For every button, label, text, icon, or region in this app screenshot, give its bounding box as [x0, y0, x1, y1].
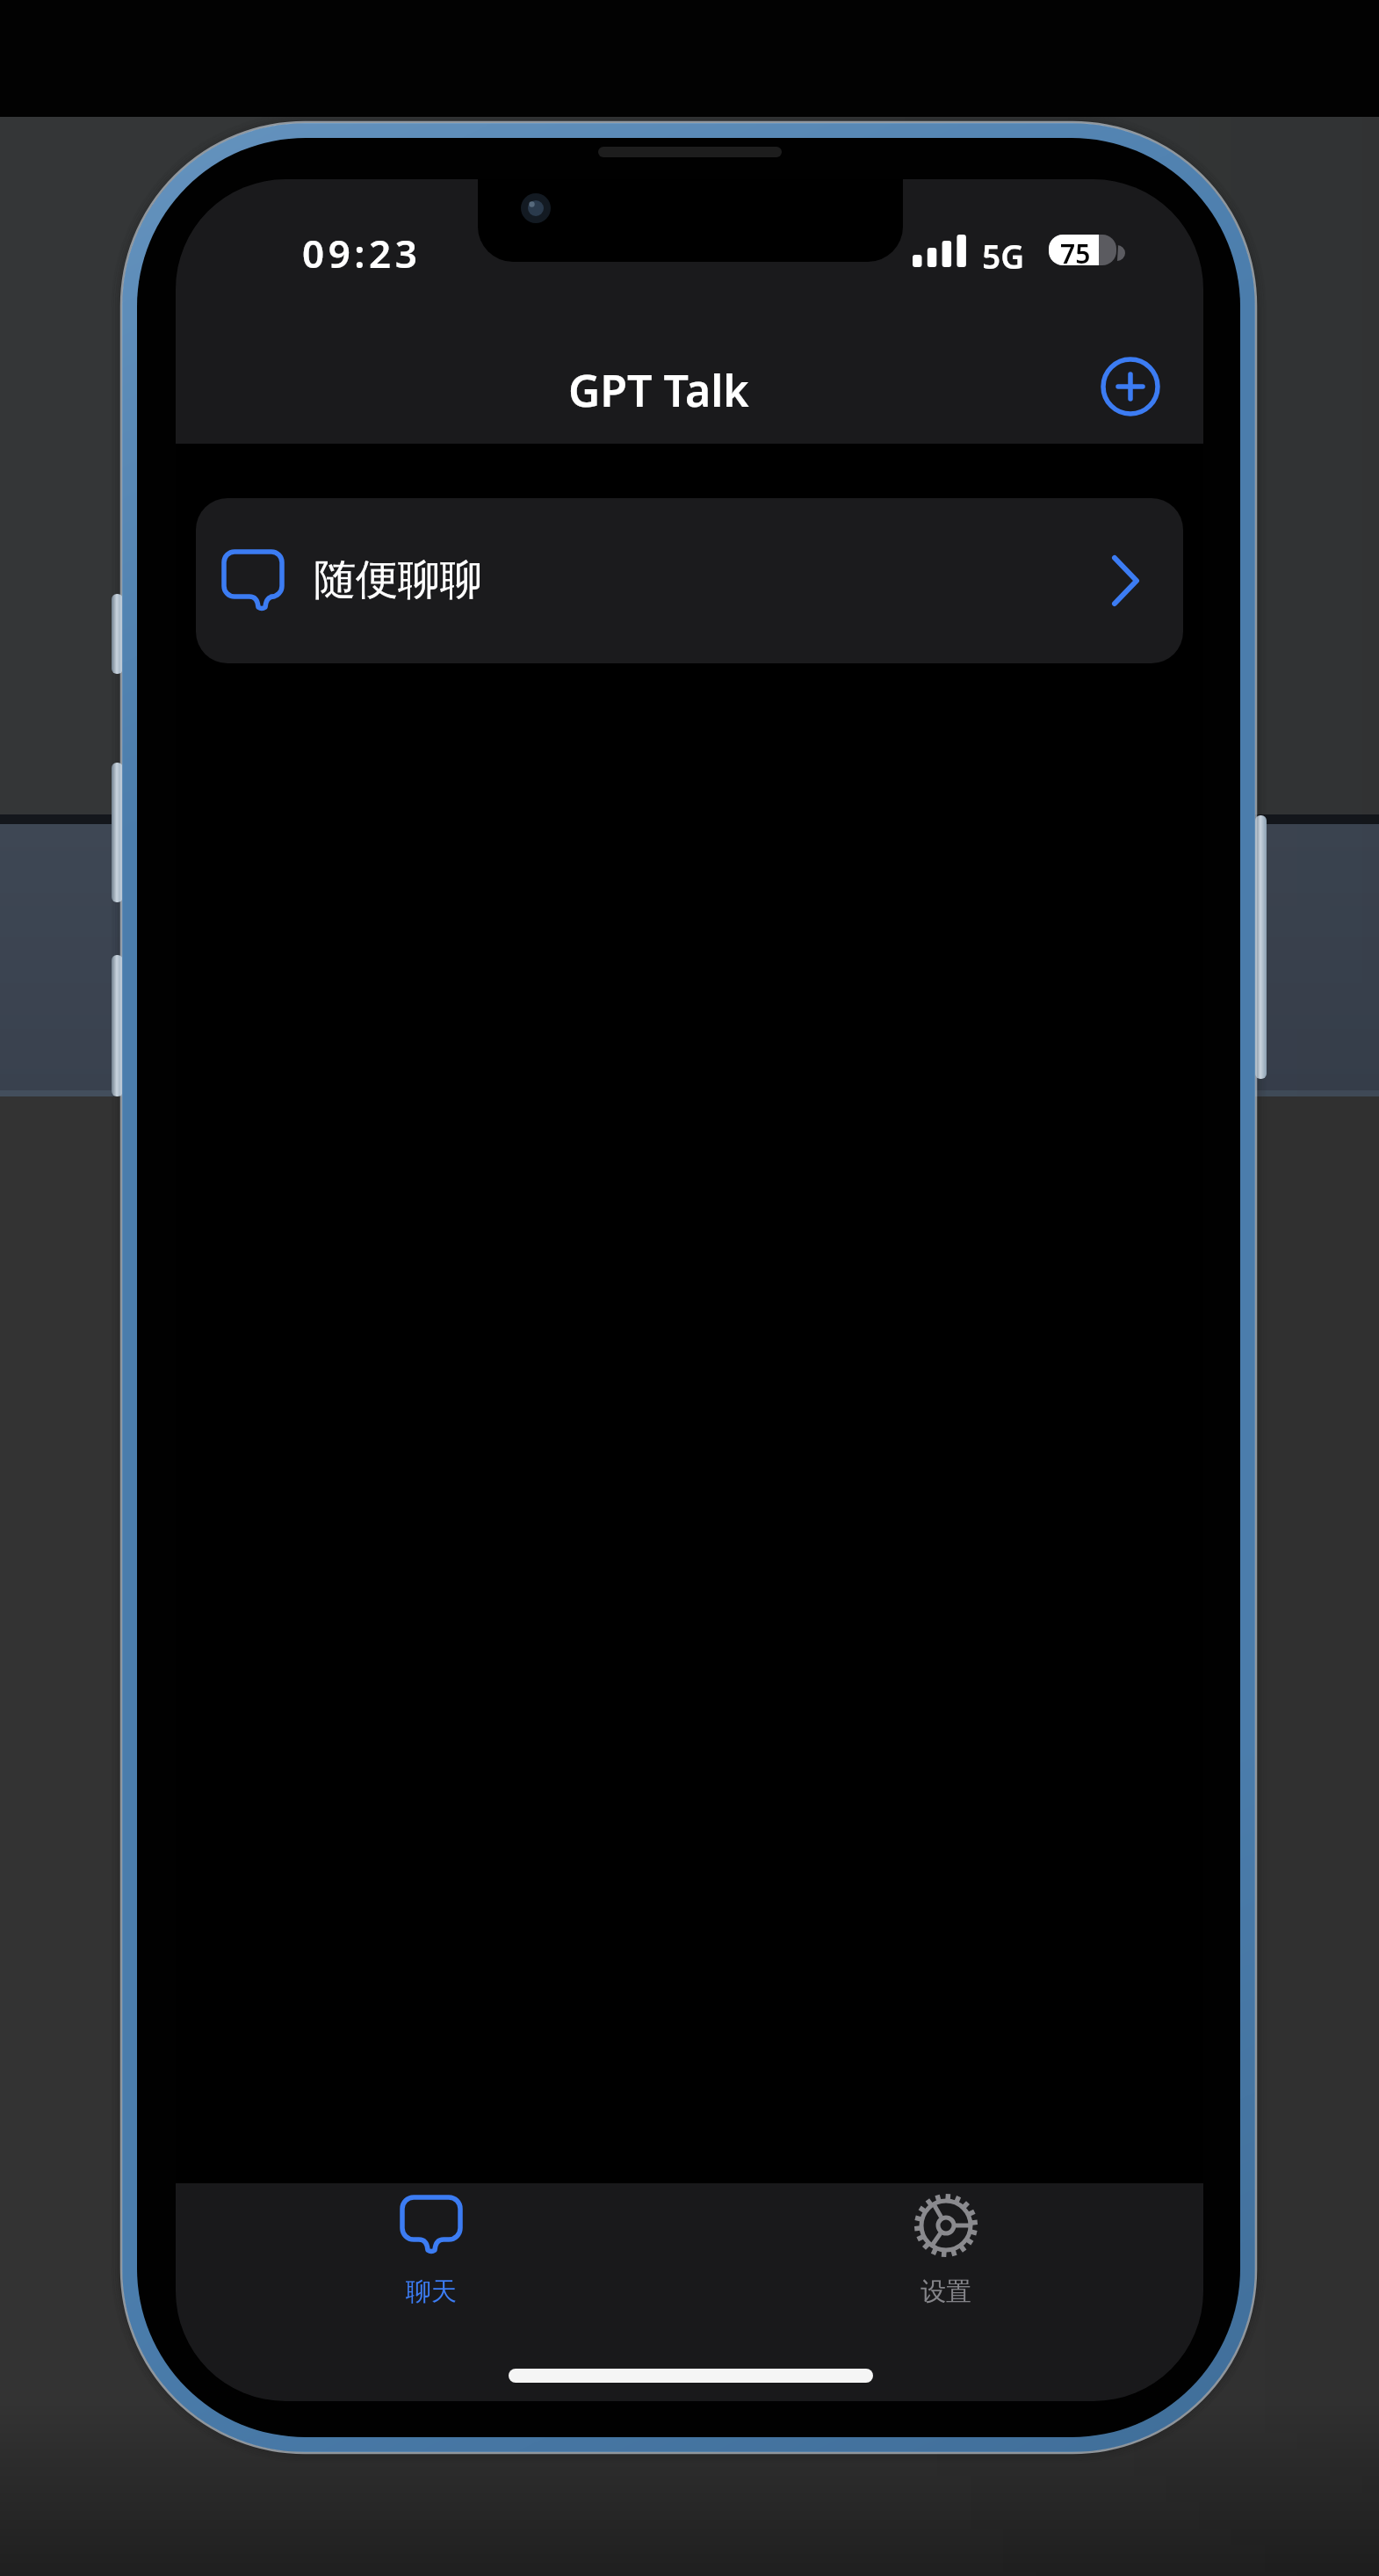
staticText: 75 [1060, 235, 1091, 271]
staticText: 设置 [921, 2276, 971, 2308]
button[interactable]: 聊天 [321, 2183, 541, 2324]
button[interactable] [1091, 347, 1170, 426]
staticText: 5G [982, 234, 1025, 278]
button[interactable]: 随便聊聊 [196, 498, 1183, 663]
button[interactable]: 设置 [836, 2183, 1056, 2324]
staticText: 随便聊聊 [314, 554, 482, 606]
staticText: 聊天 [406, 2276, 457, 2308]
staticText: 09:23 [302, 227, 422, 279]
staticText: GPT Talk [568, 360, 749, 420]
